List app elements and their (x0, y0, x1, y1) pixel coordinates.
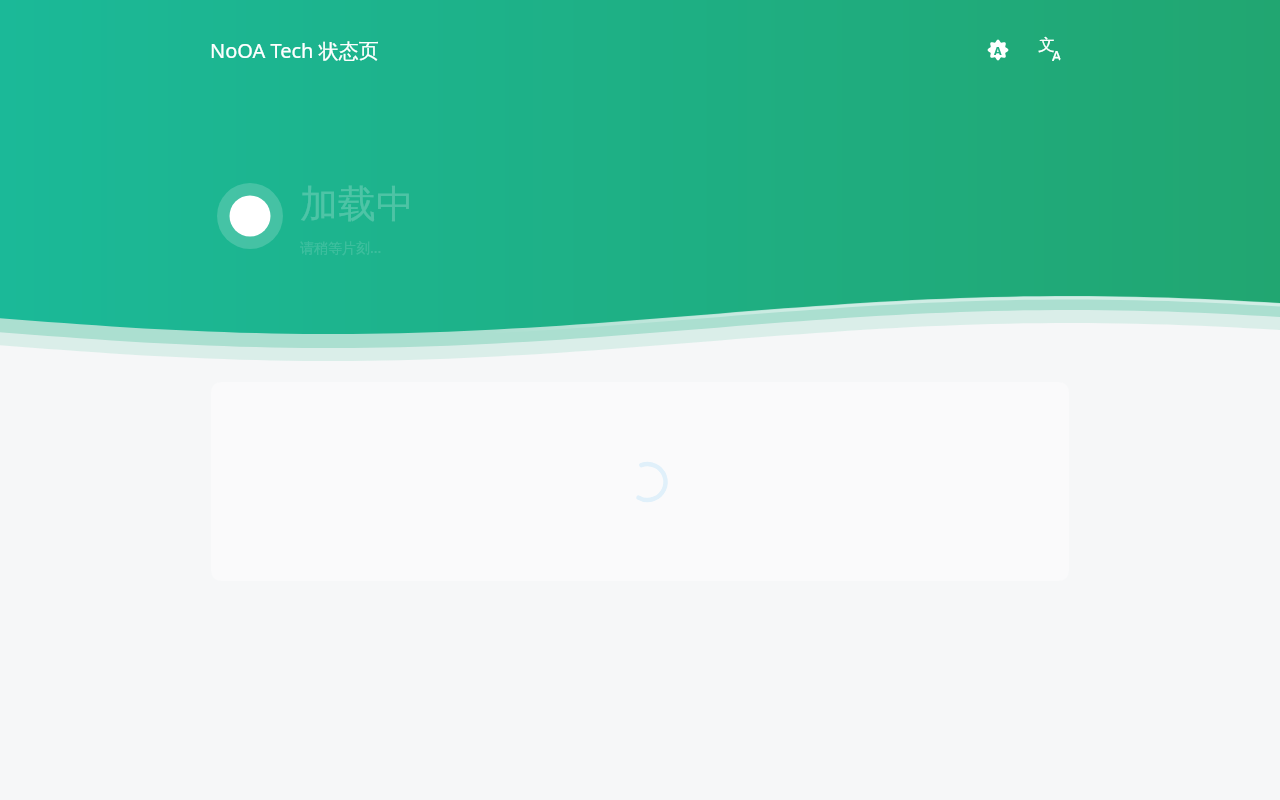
staticText: A (994, 43, 1002, 58)
staticText: 请稍等片刻... (300, 238, 382, 257)
button[interactable]: A (984, 36, 1012, 64)
button[interactable]: 文 (1036, 36, 1064, 64)
staticText: A (1052, 46, 1062, 64)
staticText: NoOA Tech 状态页 (210, 37, 379, 64)
staticText: 加载中 (300, 180, 414, 228)
staticText: 文 (1038, 36, 1055, 55)
